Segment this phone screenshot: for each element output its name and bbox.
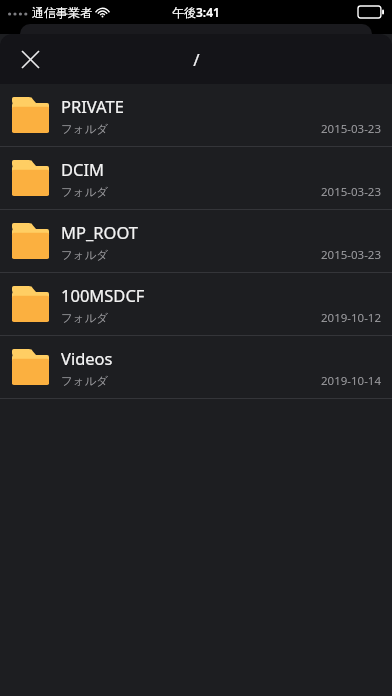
button[interactable]: PRIVATE	[0, 84, 392, 146]
staticText: DCIM	[61, 158, 105, 180]
staticText: 2019-10-14	[321, 373, 382, 389]
staticText: 2015-03-23	[321, 184, 382, 200]
staticText: MP_ROOT	[61, 221, 138, 243]
staticText: フォルダ	[61, 374, 109, 388]
staticText: PRIVATE	[61, 95, 124, 117]
button[interactable]: MP_ROOT	[0, 210, 392, 272]
staticText: フォルダ	[61, 248, 109, 262]
staticText: 通信事業者	[32, 5, 92, 20]
staticText: 2019-10-12	[321, 310, 382, 326]
staticText: フォルダ	[61, 311, 109, 325]
staticText: Videos	[61, 347, 113, 369]
staticText: フォルダ	[61, 185, 109, 199]
staticText: 100MSDCF	[61, 284, 145, 306]
button[interactable]: DCIM	[0, 147, 392, 209]
staticText: 2015-03-23	[321, 247, 382, 263]
staticText: 午後3:41	[172, 4, 220, 20]
button[interactable]: Close	[10, 39, 50, 79]
staticText: 2015-03-23	[321, 121, 382, 137]
staticText: フォルダ	[61, 122, 109, 136]
staticText: /	[193, 48, 200, 71]
button[interactable]: Videos	[0, 336, 392, 398]
button[interactable]: 100MSDCF	[0, 273, 392, 335]
